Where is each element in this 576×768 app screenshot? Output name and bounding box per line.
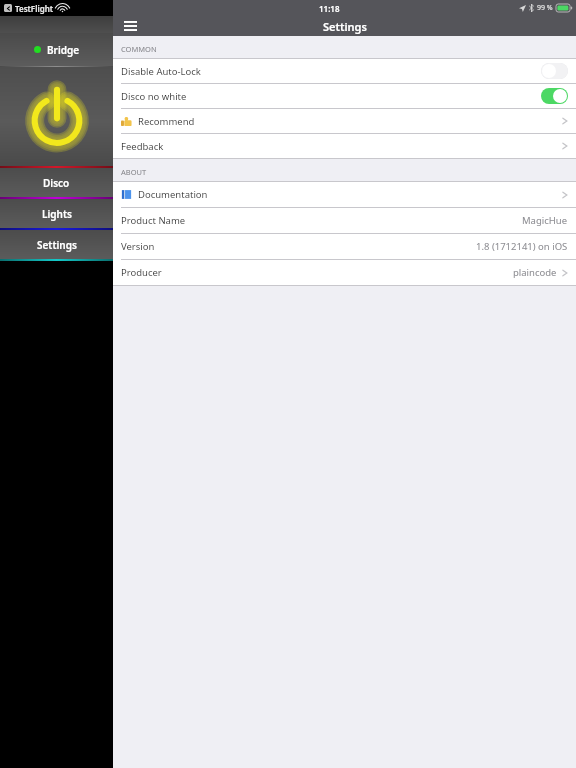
button[interactable]: Settings [0, 230, 113, 259]
button[interactable]: Feedback [113, 134, 576, 158]
button[interactable]: Producer [113, 260, 576, 285]
button[interactable]: Disable Auto-Lock [113, 59, 576, 83]
staticText: plaincode [513, 266, 557, 279]
staticText: Product Name [121, 214, 186, 227]
staticText: TestFlight [15, 3, 54, 14]
staticText: MagicHue [522, 214, 568, 227]
staticText: Recommend [138, 115, 195, 128]
button[interactable]: On [541, 88, 568, 104]
button[interactable]: Product Name [113, 208, 576, 233]
staticText: 1.8 (1712141) on iOS [476, 240, 568, 253]
button[interactable]: Recommend [113, 109, 576, 133]
staticText: Disco [43, 176, 70, 190]
staticText: ABOUT [121, 167, 147, 177]
button[interactable]: Bridge [0, 33, 113, 66]
button[interactable]: Documentation [113, 182, 576, 207]
staticText: Disable Auto-Lock [121, 65, 201, 78]
button[interactable]: Disco [0, 168, 113, 197]
staticText: 11:18 [319, 3, 340, 14]
staticText: Settings [37, 238, 77, 252]
staticText: Producer [121, 266, 162, 279]
button[interactable]: Disco no white [113, 84, 576, 108]
staticText: Lights [42, 207, 72, 221]
staticText: Bridge [47, 43, 80, 57]
button[interactable]: Version [113, 234, 576, 259]
staticText: Feedback [121, 140, 164, 153]
staticText: 99 % [537, 3, 553, 13]
staticText: Version [121, 240, 155, 253]
staticText: Disco no white [121, 90, 187, 103]
button[interactable]: Menu [120, 16, 140, 36]
staticText: Settings [323, 19, 367, 34]
button[interactable]: Lights [0, 199, 113, 228]
staticText: Documentation [138, 188, 208, 201]
button[interactable]: Power toggle [0, 67, 113, 166]
staticText: COMMON [121, 44, 157, 54]
button[interactable]: Off [541, 63, 568, 79]
